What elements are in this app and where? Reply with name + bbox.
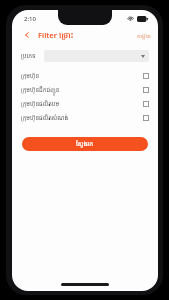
button[interactable]: Back [21,29,33,41]
button[interactable]: Select category [44,50,149,62]
staticText: ក្រុមហ៊ុន [21,72,143,80]
staticText: Filter ច្រោះ [38,30,74,40]
button[interactable]: សម្អាត [137,32,151,39]
staticText: 2:10 [24,15,36,23]
button[interactable]: ក្រុមហ៊ុនដឹកជញ្ជូន [12,83,158,97]
staticText: ប្រភេទ [21,52,36,60]
staticText: ស្វែងរក [76,140,94,148]
staticText: ក្រុមហ៊ុនដឹកជញ្ជូន [21,86,143,94]
button[interactable]: ក្រុមហ៊ុន [12,69,158,83]
button[interactable]: ក្រុមហ៊ុនផលិតសំណង់ [12,111,158,125]
staticText: សម្អាត [137,32,151,39]
staticText: ក្រុមហ៊ុនផលិតបម [21,100,143,108]
button[interactable]: ស្វែងរក [22,137,148,151]
button[interactable]: ក្រុមហ៊ុនផលិតបម [12,97,158,111]
staticText: ក្រុមហ៊ុនផលិតសំណង់ [21,114,143,122]
